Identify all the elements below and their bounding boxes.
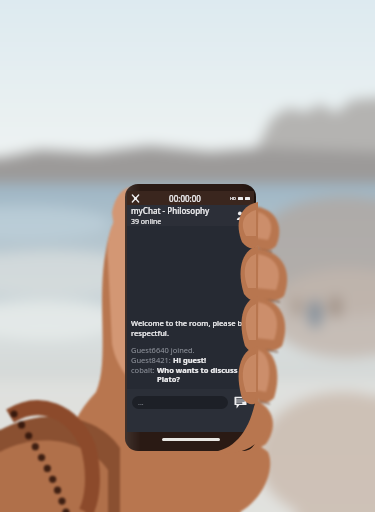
- staticText: 39 online: [131, 217, 162, 226]
- button[interactable]: Room members: [235, 208, 250, 223]
- staticText: HD: [230, 196, 236, 201]
- staticText: Guest8421:: [131, 355, 173, 365]
- staticText: ...: [138, 398, 144, 408]
- other: Room members: [236, 209, 249, 222]
- staticText: cobalt:: [131, 365, 157, 375]
- staticText: myChat - Philosophy: [131, 205, 210, 216]
- staticText: Welcome to the room, please be respectfu…: [131, 318, 247, 338]
- other: Send message: [233, 395, 248, 410]
- button[interactable]: ...: [132, 396, 228, 409]
- button[interactable]: Send message: [232, 394, 249, 411]
- staticText: Guest6640 joined.: [131, 345, 195, 355]
- button[interactable]: myChat - Philosophy: [127, 205, 254, 226]
- staticText: Hi guest!: [173, 355, 207, 365]
- staticText: Who wants to discuss Plato?: [157, 365, 250, 385]
- staticText: 00:00:00: [140, 193, 230, 204]
